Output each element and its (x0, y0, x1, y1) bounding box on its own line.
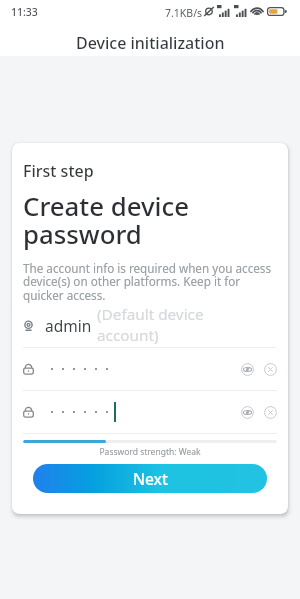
staticText: admin (45, 315, 92, 336)
staticText: The account info is required when you ac… (23, 260, 277, 303)
button[interactable]: Toggle password visibility (241, 363, 254, 376)
staticText: Next (133, 468, 168, 489)
button[interactable]: Toggle password visibility (241, 406, 254, 419)
button[interactable]: Clear (264, 363, 277, 376)
button[interactable]: Next (33, 464, 267, 493)
button[interactable]: Toggle password visibility (23, 348, 277, 390)
staticText: 7.1KB/s (165, 6, 203, 20)
staticText: Password strength: Weak (23, 446, 277, 458)
staticText: 11:33 (11, 5, 38, 19)
staticText: First step (23, 160, 94, 182)
button[interactable]: Toggle password visibility (23, 391, 277, 433)
staticText: (Default device account) (97, 304, 209, 346)
button[interactable]: Clear (264, 406, 277, 419)
staticText: Device initialization (76, 32, 225, 54)
button[interactable]: admin (23, 303, 277, 347)
staticText: Create device password (23, 188, 190, 252)
